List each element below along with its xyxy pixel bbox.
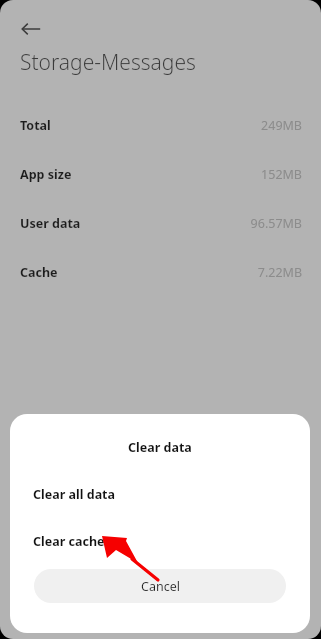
- staticText: 96.57MB: [250, 215, 302, 232]
- staticText: 152MB: [261, 166, 302, 183]
- button[interactable]: Back: [10, 8, 52, 50]
- staticText: Total: [20, 117, 51, 134]
- button[interactable]: Clear cache: [10, 525, 310, 557]
- staticText: App size: [20, 166, 72, 183]
- button[interactable]: Cache: [0, 248, 321, 297]
- button[interactable]: Clear all data: [10, 478, 310, 510]
- staticText: Clear data: [128, 439, 192, 456]
- staticText: Cache: [20, 264, 58, 281]
- button[interactable]: Total: [0, 101, 321, 150]
- staticText: Clear cache: [33, 533, 105, 550]
- button[interactable]: Cancel: [34, 569, 286, 603]
- staticText: 249MB: [261, 117, 302, 134]
- staticText: Cancel: [141, 578, 180, 595]
- staticText: Clear all data: [33, 486, 116, 503]
- button[interactable]: User data: [0, 199, 321, 248]
- button[interactable]: App size: [0, 150, 321, 199]
- staticText: 7.22MB: [257, 264, 302, 281]
- staticText: Storage-Messages: [20, 48, 196, 77]
- staticText: User data: [20, 215, 81, 232]
